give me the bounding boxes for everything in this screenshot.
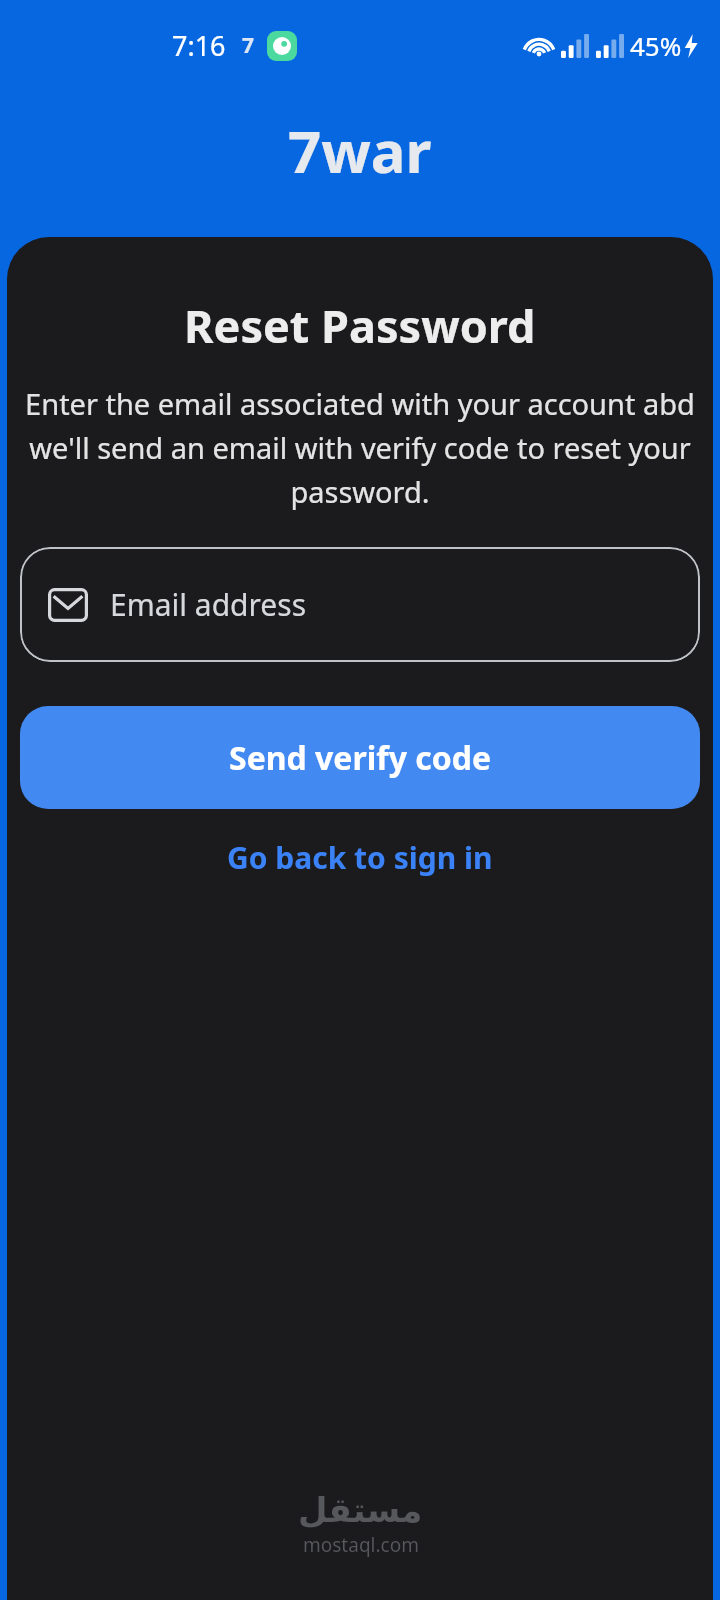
staticText: 7:16 <box>172 27 226 64</box>
staticText: مستقل <box>298 1490 423 1530</box>
staticText: Send verify code <box>229 736 492 780</box>
staticText: 45% <box>630 28 682 63</box>
staticText: 7 <box>242 31 255 60</box>
staticText: Reset Password <box>184 295 536 356</box>
staticText: Email address <box>110 584 307 625</box>
staticText: mostaql.com <box>303 1532 419 1558</box>
button[interactable]: Go back to sign in <box>207 823 513 892</box>
other: Email <box>48 588 88 622</box>
staticText: 7war <box>288 111 432 190</box>
button[interactable]: Email <box>20 547 700 662</box>
staticText: Go back to sign in <box>227 837 493 878</box>
button[interactable]: Send verify code <box>20 706 700 809</box>
staticText: Enter the email associated with your acc… <box>21 384 699 511</box>
